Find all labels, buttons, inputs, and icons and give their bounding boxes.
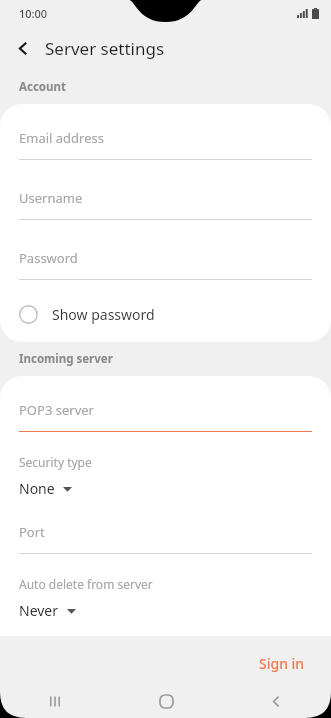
staticText: Email address <box>19 129 104 147</box>
staticText: Password <box>19 249 78 267</box>
button[interactable]: Sign in <box>243 647 321 680</box>
button[interactable]: Password <box>0 236 331 296</box>
staticText: Account <box>19 79 66 95</box>
button[interactable]: Back <box>3 28 43 68</box>
button[interactable]: Security type <box>0 448 331 510</box>
staticText: Username <box>19 189 83 207</box>
staticText: POP3 server <box>19 401 94 419</box>
button[interactable]: Recent apps <box>0 684 111 718</box>
staticText: Sign in <box>259 654 305 673</box>
staticText: Never <box>19 601 59 620</box>
staticText: Security type <box>19 454 92 470</box>
button[interactable]: Port <box>0 510 331 570</box>
button[interactable]: Back <box>221 684 331 718</box>
button[interactable]: Home <box>111 684 221 718</box>
button[interactable]: POP3 server <box>0 388 331 448</box>
button[interactable]: Show password <box>0 296 331 332</box>
button[interactable]: Email address <box>0 116 331 176</box>
staticText: 10:00 <box>19 6 48 21</box>
button[interactable]: Username <box>0 176 331 236</box>
staticText: Show password <box>52 305 155 324</box>
staticText: Server settings <box>45 37 165 60</box>
staticText: None <box>19 479 55 498</box>
button[interactable]: Auto delete from server <box>0 570 331 632</box>
staticText: Auto delete from server <box>19 576 153 592</box>
staticText: Incoming server <box>19 351 113 367</box>
staticText: Port <box>19 523 45 541</box>
